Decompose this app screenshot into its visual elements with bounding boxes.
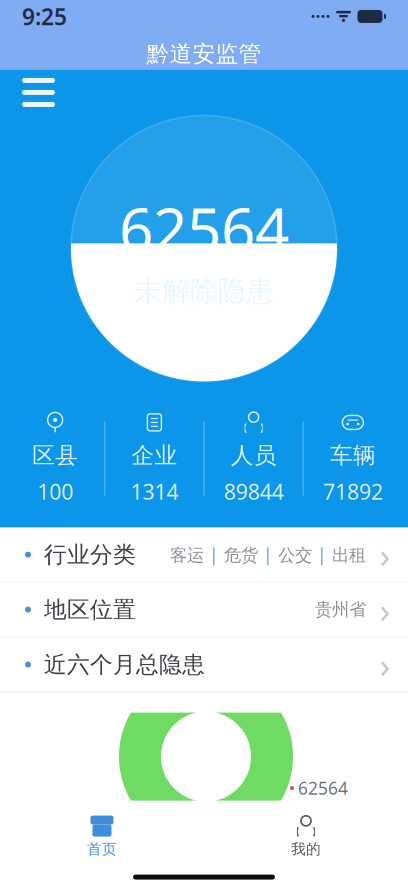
button[interactable]: 我的	[204, 810, 408, 863]
staticText: 客运 | 危货 | 公交 | 出租	[170, 543, 366, 566]
staticText: 行业分类	[44, 541, 136, 568]
staticText: 人员	[231, 441, 277, 469]
staticText: 9:25	[22, 1, 67, 31]
staticText: ›	[379, 587, 390, 633]
staticText: ›	[379, 642, 390, 688]
staticText: 1314	[130, 477, 178, 506]
staticText: 89844	[224, 477, 284, 506]
button[interactable]: 地区位置	[0, 583, 408, 638]
staticText: 黔道安监管	[146, 40, 261, 68]
staticText: 车辆	[330, 441, 376, 469]
staticText: 区县	[32, 441, 78, 469]
staticText: 首页	[87, 840, 117, 858]
staticText: 我的	[291, 840, 321, 858]
staticText: 未解除隐患	[134, 274, 274, 308]
staticText: 100	[37, 477, 73, 506]
button[interactable]: Menu	[12, 68, 65, 117]
staticText: 企业	[131, 441, 177, 469]
staticText: 62564	[298, 777, 348, 800]
button[interactable]: 首页	[0, 810, 204, 863]
staticText: 近六个月总隐患	[44, 651, 205, 678]
button[interactable]: 近六个月总隐患	[0, 638, 408, 693]
button[interactable]: 行业分类	[0, 528, 408, 583]
staticText: ›	[379, 532, 390, 578]
staticText: 71892	[323, 477, 383, 506]
staticText: 贵州省	[315, 599, 366, 620]
staticText: 地区位置	[44, 596, 136, 623]
staticText: 62564	[119, 188, 289, 268]
